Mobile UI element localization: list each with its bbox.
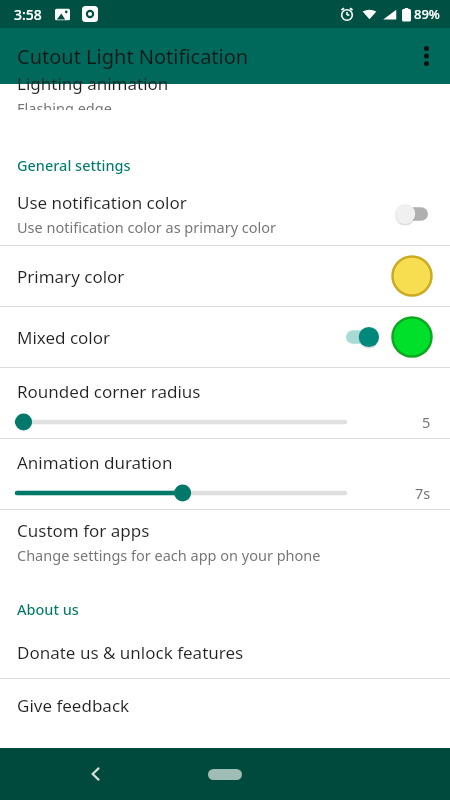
button[interactable]: Lighting animation [0,84,450,122]
button[interactable]: Custom for apps [0,510,450,573]
staticText: Change settings for each app on your pho… [17,545,321,565]
staticText: Flashing edge [17,98,112,110]
button[interactable]: Mixed color [0,307,450,367]
staticText: Animation duration [17,451,173,474]
staticText: Use notification color as primary color [17,217,277,237]
button[interactable]: More options [402,32,450,80]
button[interactable]: Toggle [343,326,381,348]
staticText: 5 [422,412,431,432]
button[interactable]: Give feedback [0,679,450,731]
staticText: Mixed color [17,326,111,349]
staticText: 3:58 [14,5,42,24]
staticText: Rounded corner radius [17,380,201,403]
staticText: About us [17,599,79,619]
staticText: General settings [17,155,131,175]
button[interactable]: Back [75,753,117,795]
button[interactable]: Animation duration [0,439,450,509]
staticText: Custom for apps [17,519,150,542]
staticText: 7s [415,483,431,503]
staticText: Cutout Light Notification [17,43,249,70]
button[interactable]: Use notification color [0,182,450,245]
button[interactable]: Toggle [393,203,431,225]
button[interactable]: Home [202,752,248,796]
staticText: 89% [414,5,440,23]
staticText: Use notification color [17,191,187,214]
button[interactable]: Primary color [0,246,450,306]
staticText: Lighting animation [17,72,169,95]
staticText: Primary color [17,265,125,288]
staticText: Donate us & unlock features [17,641,244,664]
staticText: Give feedback [17,694,130,717]
button[interactable]: Donate us & unlock features [0,626,450,678]
button[interactable]: Rounded corner radius [0,368,450,438]
